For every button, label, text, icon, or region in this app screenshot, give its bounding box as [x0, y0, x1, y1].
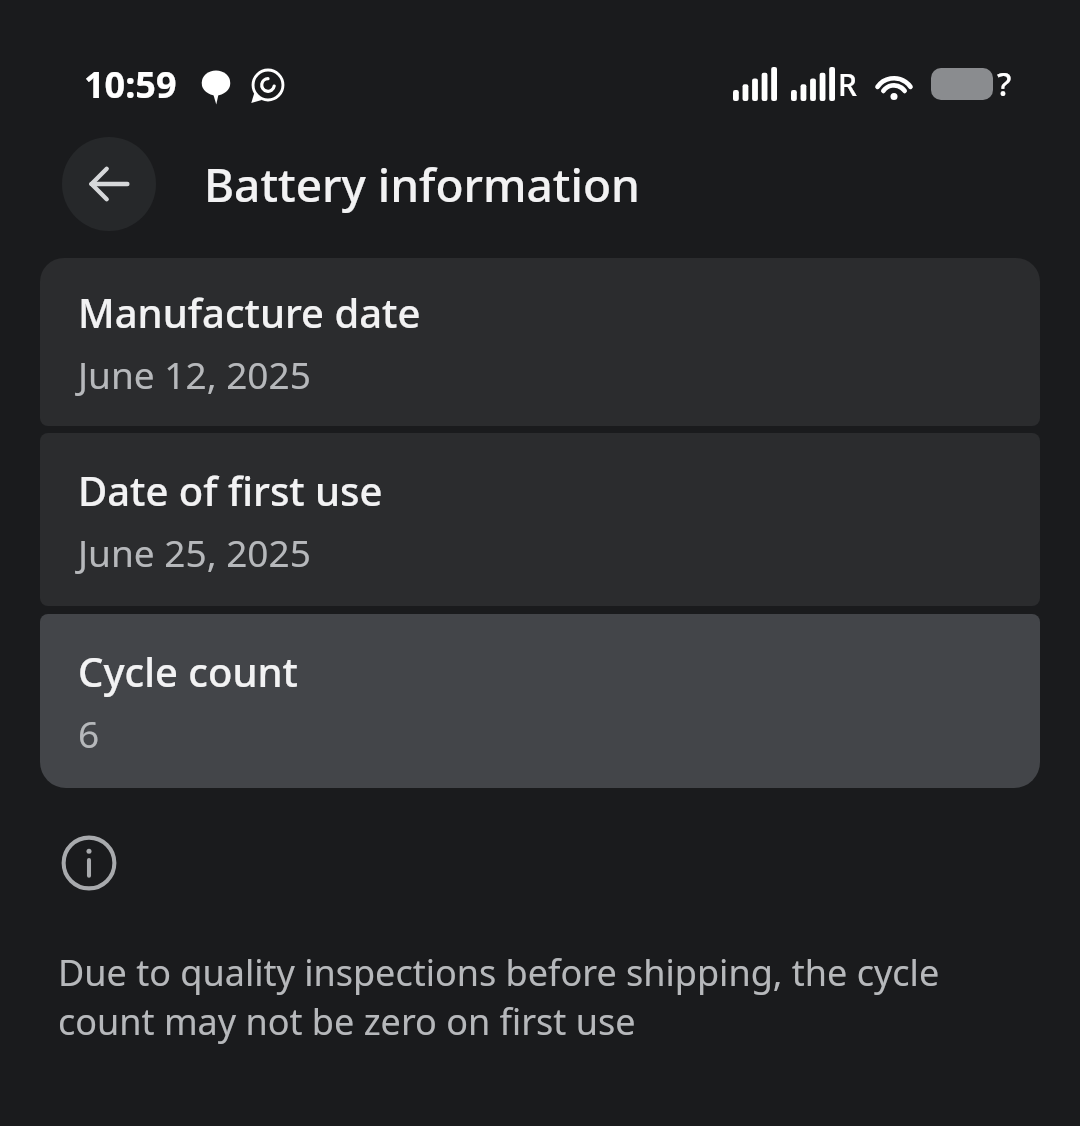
staticText: 10:59: [84, 60, 177, 109]
staticText: Cycle count: [78, 644, 298, 698]
staticText: June 25, 2025: [78, 527, 311, 577]
staticText: ?: [997, 62, 1012, 106]
staticText: Manufacture date: [78, 285, 421, 339]
button[interactable]: Cycle count: [40, 614, 1040, 788]
button[interactable]: Manufacture date: [40, 258, 1040, 426]
button[interactable]: Date of first use: [40, 433, 1040, 606]
staticText: Date of first use: [78, 463, 383, 517]
staticText: R: [838, 64, 857, 105]
staticText: Battery information: [204, 153, 640, 216]
staticText: 6: [78, 708, 100, 758]
button[interactable]: Back: [62, 137, 156, 231]
staticText: June 12, 2025: [78, 349, 311, 399]
staticText: Due to quality inspections before shippi…: [58, 948, 1024, 1045]
